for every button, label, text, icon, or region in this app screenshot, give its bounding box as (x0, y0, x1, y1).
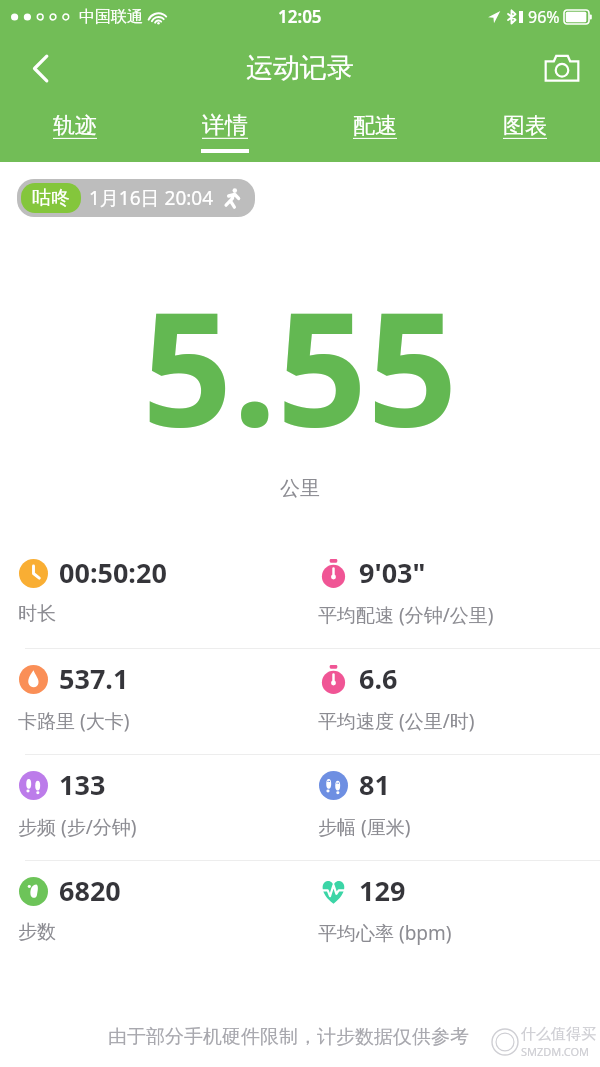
staticText: 步幅 (厘米) (318, 814, 411, 840)
staticText: 129 (359, 872, 406, 909)
staticText: 5.55 (142, 257, 458, 472)
staticText: 9'03" (359, 554, 426, 591)
staticText: 537.1 (59, 660, 129, 697)
button[interactable]: Camera (538, 44, 586, 92)
staticText: 中国联通 (79, 7, 143, 27)
button[interactable]: 00:50:20 (18, 543, 300, 648)
staticText: 图表 (503, 112, 547, 140)
staticText: 配速 (353, 112, 397, 140)
staticText: 公里 (280, 476, 320, 501)
staticText: 步频 (步/分钟) (18, 814, 137, 840)
button[interactable]: Back (16, 44, 64, 92)
staticText: 平均心率 (bpm) (318, 920, 452, 946)
staticText: 卡路里 (大卡) (18, 708, 130, 734)
button[interactable]: 6820 (18, 861, 300, 966)
staticText: 133 (59, 766, 106, 803)
button[interactable]: 配速 (300, 102, 450, 162)
staticText: 时长 (18, 602, 56, 626)
staticText: 轨迹 (53, 112, 97, 140)
button[interactable]: 129 (318, 861, 600, 966)
button[interactable]: 9'03" (318, 543, 600, 648)
staticText: 运动记录 (246, 51, 354, 85)
staticText: 00:50:20 (59, 554, 167, 591)
staticText: 96% (528, 6, 560, 28)
staticText: 12:05 (278, 5, 322, 28)
staticText: SMZDM.COM (521, 1044, 590, 1059)
staticText: 由于部分手机硬件限制，计步数据仅供参考 (108, 1025, 469, 1049)
button[interactable]: 81 (318, 755, 600, 860)
staticText: 咕咚 (32, 186, 70, 210)
button[interactable]: 轨迹 (0, 102, 150, 162)
staticText: 1月16日 20:04 (89, 185, 214, 211)
staticText: 什么值得买 (521, 1025, 596, 1044)
button[interactable]: 详情 (150, 102, 300, 162)
staticText: 平均配速 (分钟/公里) (318, 602, 494, 628)
button[interactable]: 537.1 (18, 649, 300, 754)
staticText: 6820 (59, 872, 121, 909)
button[interactable]: 咕咚 (21, 183, 251, 213)
button[interactable]: 6.6 (318, 649, 600, 754)
staticText: 81 (359, 766, 390, 803)
staticText: 平均速度 (公里/时) (318, 708, 475, 734)
button[interactable]: 133 (18, 755, 300, 860)
button[interactable]: 图表 (450, 102, 600, 162)
staticText: 步数 (18, 920, 56, 944)
staticText: 详情 (202, 111, 248, 140)
staticText: 6.6 (359, 660, 398, 697)
